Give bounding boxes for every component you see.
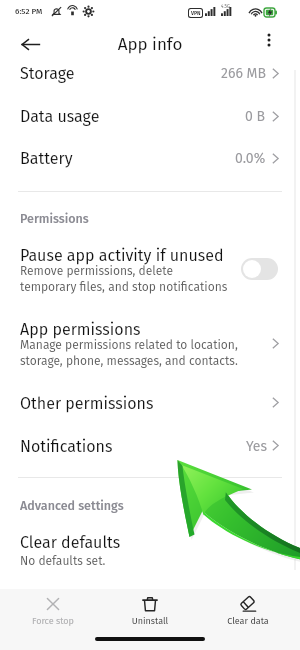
button[interactable]: Back	[14, 28, 46, 60]
button[interactable]: More options	[255, 26, 283, 54]
staticText: Clear data	[203, 616, 293, 627]
staticText: 0.0%	[235, 150, 266, 167]
staticText: Other permissions	[20, 394, 154, 413]
staticText: Notifications	[20, 437, 113, 456]
staticText: App permissions	[20, 320, 141, 339]
staticText: Manage permissions related to location, …	[20, 338, 238, 368]
staticText: Remove permissions, delete temporary fil…	[20, 264, 228, 294]
staticText: Permissions	[20, 211, 89, 226]
staticText: Force stop	[8, 616, 98, 627]
staticText: 6:52 PM	[15, 7, 43, 17]
staticText: No defaults set.	[20, 554, 106, 568]
staticText: 0 B	[245, 108, 266, 125]
button[interactable]: Battery	[0, 137, 300, 180]
staticText: Yes	[246, 438, 268, 455]
button[interactable]	[241, 258, 278, 280]
staticText: 4.5G	[221, 4, 230, 10]
staticText: Pause app activity if unused	[20, 246, 224, 265]
staticText: 266 MB	[221, 65, 266, 82]
button[interactable]: Storage	[0, 52, 300, 95]
staticText: Uninstall	[105, 616, 195, 627]
staticText: Data usage	[20, 107, 100, 126]
button[interactable]: Uninstall	[105, 589, 195, 627]
staticText: Battery	[20, 149, 73, 168]
staticText: Storage	[20, 64, 75, 83]
staticText: VPN	[191, 10, 201, 16]
button[interactable]: Data usage	[0, 95, 300, 138]
staticText: App info	[0, 34, 300, 54]
button[interactable]: Clear data	[203, 589, 293, 627]
button[interactable]: Force stop	[8, 589, 98, 627]
staticText: Advanced settings	[20, 498, 124, 513]
staticText: Clear defaults	[20, 533, 121, 552]
